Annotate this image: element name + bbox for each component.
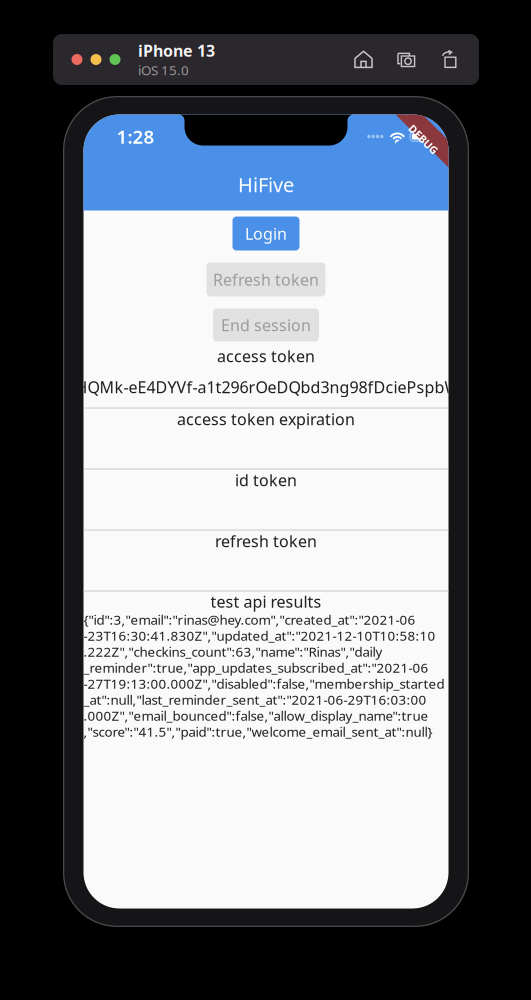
staticText: End session — [221, 314, 311, 336]
button[interactable]: End session — [213, 308, 319, 341]
button[interactable]: Login — [232, 216, 299, 250]
staticText: Refresh token — [213, 269, 319, 290]
staticText: -23T16:30:41.830Z","updated_at":"2021-12… — [83, 627, 435, 644]
staticText: refresh token — [215, 530, 317, 552]
staticText: _reminder":true,"app_updates_subscribed_… — [83, 659, 428, 676]
staticText: -27T19:13:00.000Z","disabled":false,"mem… — [83, 675, 444, 692]
staticText: test api results — [210, 591, 321, 612]
button[interactable]: Home — [348, 44, 379, 75]
staticText: .000Z","email_bounced":false,"allow_disp… — [83, 707, 428, 724]
staticText: id token — [235, 469, 297, 491]
staticText: _at":null,"last_reminder_sent_at":"2021-… — [83, 691, 426, 708]
staticText: {"id":3,"email":"rinas@hey.com","created… — [83, 611, 415, 628]
staticText: iPhone 13 — [138, 40, 215, 61]
button[interactable]: Rotate — [434, 44, 465, 75]
button[interactable]: Take Screenshot — [391, 44, 422, 75]
staticText: ,"score":"41.5","paid":true,"welcome_ema… — [83, 723, 432, 740]
staticText: HiFive — [238, 171, 294, 198]
staticText: Login — [245, 223, 287, 244]
staticText: iOS 15.0 — [138, 61, 189, 79]
button[interactable]: Refresh token — [206, 262, 325, 296]
staticText: .222Z","checkins_count":63,"name":"Rinas… — [83, 643, 382, 660]
staticText: DEBUG — [405, 132, 442, 147]
staticText: 1:28 — [116, 124, 154, 149]
staticText: rmHQMk-eE4DYVf-a1t296rOeDQbd3ng98fDciePs… — [53, 376, 478, 398]
staticText: access token expiration — [177, 408, 355, 430]
staticText: access token — [217, 345, 315, 367]
